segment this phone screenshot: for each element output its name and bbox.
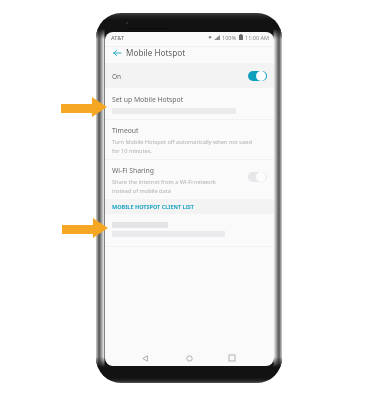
staticText: On — [112, 72, 122, 81]
button[interactable]: Back — [109, 45, 124, 60]
staticText: 100% — [222, 34, 237, 41]
button[interactable]: Home — [179, 349, 199, 366]
staticText: Mobile Hotspot — [126, 47, 186, 58]
button[interactable]: Wi-Fi Sharing — [105, 160, 274, 200]
staticText: Set up Mobile Hotspot — [112, 95, 184, 104]
other: Pointer arrow — [62, 218, 108, 238]
button[interactable] — [105, 213, 274, 247]
staticText: AT&T — [111, 34, 125, 41]
button[interactable]: Back — [135, 349, 155, 366]
button[interactable]: Timeout — [105, 120, 274, 160]
other: Pointer arrow — [61, 97, 107, 117]
staticText: Timeout — [112, 126, 139, 135]
button[interactable]: Set up Mobile Hotspot — [105, 88, 274, 120]
button[interactable]: Recent apps — [222, 349, 242, 366]
staticText: Turn Mobile Hotspot off automatically wh… — [112, 138, 252, 154]
button[interactable]: On — [105, 63, 274, 88]
staticText: 11:00 AM — [245, 34, 269, 41]
staticText: Wi-Fi Sharing — [112, 166, 154, 175]
staticText: MOBILE HOTSPOT CLIENT LIST — [112, 203, 195, 210]
staticText: Share the internet from a Wi-Fi network … — [112, 178, 216, 194]
